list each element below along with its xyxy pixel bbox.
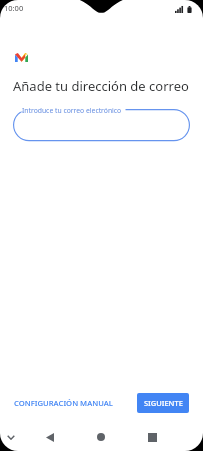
staticText: CONFIGURACIÓN MANUAL <box>14 398 113 408</box>
button[interactable]: Recents <box>143 428 161 446</box>
button[interactable]: Home <box>92 428 110 446</box>
button[interactable]: SIGUIENTE <box>137 393 189 413</box>
button[interactable]: Hide keyboard <box>2 428 20 446</box>
staticText: Añade tu dirección de correo <box>13 77 189 95</box>
button[interactable]: CONFIGURACIÓN MANUAL <box>9 393 118 413</box>
staticText: 10:00 <box>4 3 24 13</box>
staticText: Introduce tu correo electrónico <box>22 106 122 115</box>
button[interactable]: Back <box>41 428 59 446</box>
staticText: SIGUIENTE <box>144 398 183 408</box>
